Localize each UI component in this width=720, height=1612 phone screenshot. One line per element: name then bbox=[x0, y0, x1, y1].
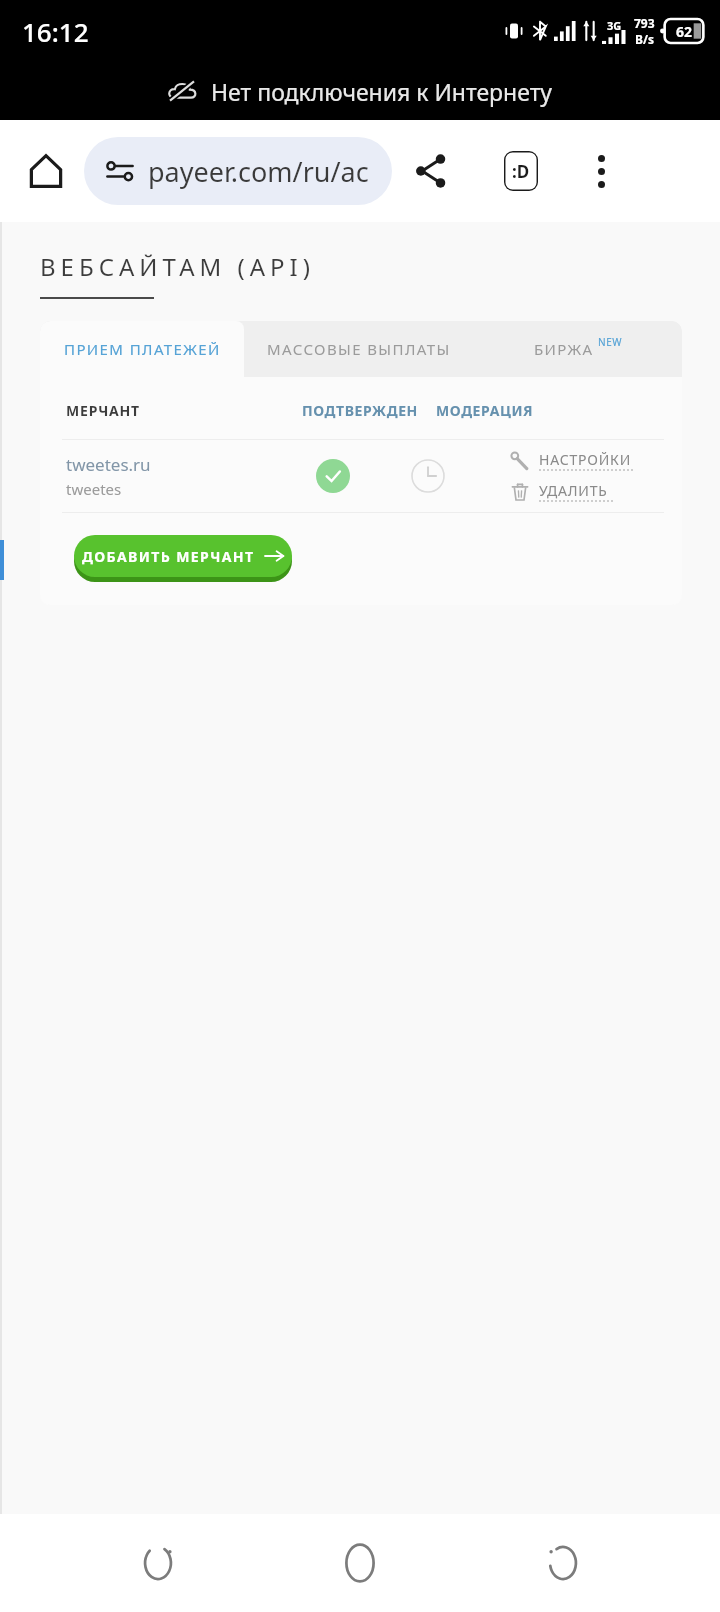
staticText: МАССОВЫЕ ВЫПЛАТЫ bbox=[267, 339, 451, 359]
staticText: НАСТРОЙКИ bbox=[539, 450, 632, 469]
button[interactable]: НАСТРОЙКИ bbox=[510, 450, 635, 472]
staticText: :D bbox=[512, 160, 530, 183]
button[interactable]: ДОБАВИТЬ МЕРЧАНТ bbox=[74, 535, 292, 577]
staticText: B/s bbox=[635, 31, 654, 47]
button[interactable]: Home bbox=[12, 137, 80, 205]
staticText: Нет подключения к Интернету bbox=[211, 76, 553, 107]
button[interactable]: More options bbox=[570, 140, 632, 202]
staticText: tweetes bbox=[66, 479, 122, 499]
staticText: ПРИЕМ ПЛАТЕЖЕЙ bbox=[64, 339, 221, 359]
button[interactable]: ПРИЕМ ПЛАТЕЖЕЙ bbox=[40, 321, 244, 377]
staticText: NEW bbox=[598, 335, 623, 349]
staticText: БИРЖА bbox=[534, 339, 594, 359]
button[interactable]: payeer.com/ru/ac bbox=[84, 137, 392, 205]
button[interactable]: МАССОВЫЕ ВЫПЛАТЫ bbox=[244, 321, 474, 377]
button[interactable]: Home bbox=[315, 1518, 405, 1608]
staticText: 793 bbox=[634, 15, 655, 31]
button[interactable]: Back bbox=[518, 1518, 608, 1608]
staticText: 16:12 bbox=[22, 14, 89, 49]
staticText: tweetes.ru bbox=[66, 453, 151, 476]
button[interactable]: Share bbox=[400, 140, 462, 202]
button[interactable]: УДАЛИТЬ bbox=[510, 481, 615, 503]
staticText: ВЕБСАЙТАМ (API) bbox=[40, 250, 315, 283]
staticText: 62 bbox=[676, 22, 693, 41]
staticText: ПОДТВЕРЖДЕН bbox=[302, 401, 418, 420]
staticText: ДОБАВИТЬ МЕРЧАНТ bbox=[82, 547, 255, 566]
staticText: МОДЕРАЦИЯ bbox=[436, 401, 534, 420]
staticText: payeer.com/ru/ac bbox=[148, 153, 369, 190]
staticText: УДАЛИТЬ bbox=[539, 481, 608, 500]
staticText: МЕРЧАНТ bbox=[66, 401, 140, 420]
button[interactable]: БИРЖА bbox=[474, 321, 682, 377]
button[interactable]: Tabs bbox=[490, 140, 552, 202]
staticText: 3G bbox=[607, 18, 622, 33]
button[interactable]: Recent apps bbox=[113, 1518, 203, 1608]
